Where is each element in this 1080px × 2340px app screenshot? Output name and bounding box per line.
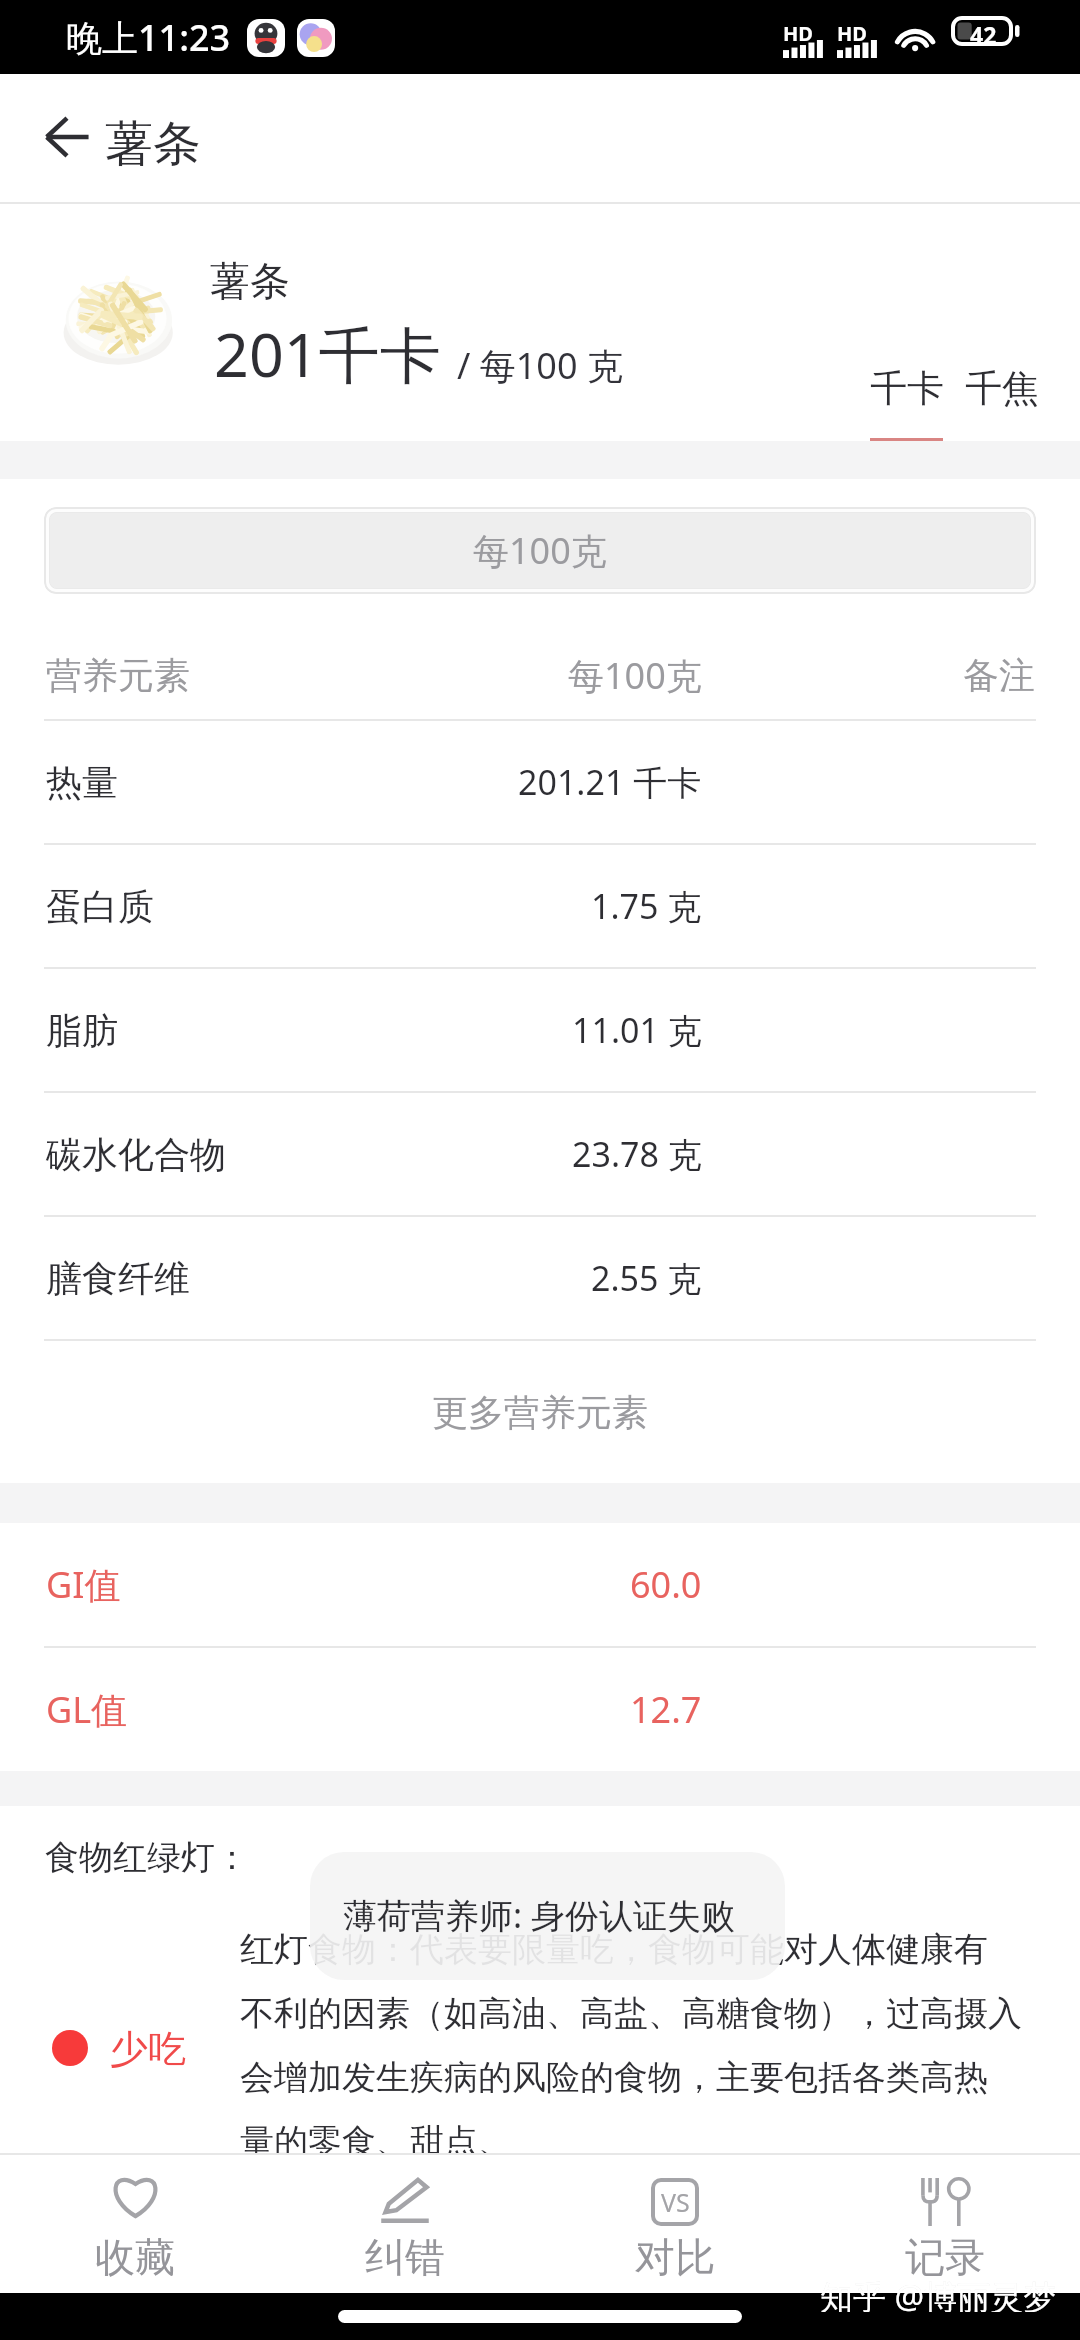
staticText: 收藏 — [95, 2232, 175, 2282]
staticText: 纠错 — [365, 2232, 445, 2282]
staticText: 对比 — [635, 2232, 715, 2282]
staticText: 晚上11:23 — [66, 13, 231, 62]
staticText: 脂肪 — [46, 1008, 118, 1053]
staticText: 201千卡 — [214, 312, 441, 395]
button[interactable]: 蛋白质 — [0, 845, 1080, 967]
button[interactable]: 碳水化合物 — [0, 1093, 1080, 1215]
staticText: 薄荷营养师: 身份认证失败 — [343, 1892, 735, 1938]
button[interactable]: GI值 — [0, 1523, 1080, 1646]
staticText: 营养元素 — [46, 653, 190, 698]
button[interactable]: Back — [17, 74, 117, 202]
staticText: 膳食纤维 — [46, 1256, 190, 1301]
button[interactable]: VS — [540, 2153, 810, 2293]
staticText: 千卡 — [870, 365, 944, 412]
staticText: 2.55 克 — [591, 1255, 702, 1301]
button[interactable]: 更多营养元素 — [0, 1341, 1080, 1483]
staticText: 量的零食、甜点、 — [240, 2120, 512, 2163]
staticText: 更多营养元素 — [432, 1390, 648, 1435]
staticText: 每100克 — [473, 526, 607, 575]
staticText: 薯条 — [105, 114, 201, 174]
staticText: 备注 — [963, 653, 1035, 698]
staticText: 11.01 克 — [572, 1007, 702, 1053]
staticText: VS — [661, 2185, 690, 2219]
button[interactable]: 热量 — [0, 721, 1080, 843]
button[interactable]: 纠错 — [270, 2153, 540, 2293]
staticText: 知乎 @博丽灵梦 — [820, 2276, 1057, 2312]
staticText: HD — [837, 20, 867, 47]
staticText: 热量 — [46, 760, 118, 805]
staticText: 23.78 克 — [572, 1131, 702, 1177]
staticText: 记录 — [905, 2232, 985, 2282]
button[interactable]: 千卡 — [860, 354, 952, 434]
button[interactable]: 脂肪 — [0, 969, 1080, 1091]
button[interactable]: 收藏 — [0, 2153, 270, 2293]
button[interactable]: 膳食纤维 — [0, 1217, 1080, 1339]
staticText: 红灯食物：代表要限量吃，食物可能对人体健康有 — [240, 1928, 988, 1971]
staticText: / 每100 克 — [457, 341, 623, 390]
staticText: 碳水化合物 — [46, 1132, 226, 1177]
staticText: 蛋白质 — [46, 884, 154, 929]
staticText: 会增加发生疾病的风险的食物，主要包括各类高热 — [240, 2056, 988, 2099]
staticText: 不利的因素（如高油、高盐、高糖食物），过高摄入 — [240, 1992, 1022, 2035]
staticText: GI值 — [46, 1560, 121, 1609]
staticText: 60.0 — [630, 1560, 702, 1609]
staticText: GL值 — [46, 1685, 128, 1734]
button[interactable]: 千焦 — [957, 354, 1043, 414]
staticText: 42 — [970, 19, 997, 50]
staticText: 少吃 — [110, 2025, 186, 2073]
staticText: 每100克 — [568, 651, 702, 700]
staticText: HD — [783, 20, 813, 47]
staticText: 1.75 克 — [591, 883, 702, 929]
button[interactable]: 每100克 — [44, 507, 1036, 594]
staticText: 千焦 — [965, 365, 1039, 412]
staticText: 食物红绿灯： — [45, 1836, 249, 1879]
button[interactable]: GL值 — [0, 1648, 1080, 1771]
staticText: 薯条 — [210, 256, 290, 306]
staticText: 201.21 千卡 — [518, 759, 702, 805]
staticText: 12.7 — [630, 1685, 702, 1734]
button[interactable]: 记录 — [810, 2153, 1080, 2293]
